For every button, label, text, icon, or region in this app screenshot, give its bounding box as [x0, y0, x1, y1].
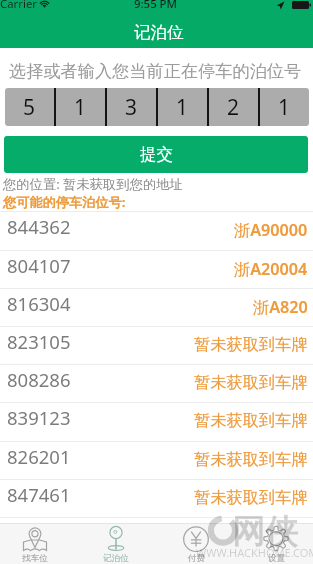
button[interactable]: Find parking: [0, 524, 74, 564]
staticText: 暂未获取到车牌: [194, 372, 308, 392]
staticText: 826201: [7, 444, 71, 469]
staticText: 暂未获取到车牌: [194, 334, 308, 354]
staticText: 付费: [188, 553, 205, 564]
button[interactable]: 823105: [0, 326, 313, 364]
staticText: 823105: [7, 329, 71, 354]
staticText: 2: [227, 93, 240, 122]
staticText: 您可能的停车泊位号:: [3, 193, 126, 211]
staticText: 3: [125, 93, 138, 122]
staticText: 804107: [7, 253, 71, 278]
staticText: 记泊位: [134, 22, 184, 43]
staticText: 暂未获取到车牌: [194, 449, 308, 469]
staticText: 您的位置: 暂未获取到您的地址: [3, 175, 183, 193]
button[interactable]: 5: [5, 88, 54, 126]
staticText: 选择或者输入您当前正在停车的泊位号: [9, 60, 302, 82]
button[interactable]: 1: [158, 88, 207, 126]
staticText: 844362: [7, 214, 71, 239]
other: Settings: [263, 526, 289, 553]
staticText: 提交: [140, 144, 173, 165]
staticText: 网侠: [232, 511, 298, 553]
staticText: 1: [176, 93, 189, 122]
button[interactable]: 816304: [0, 288, 313, 326]
button[interactable]: 1: [56, 88, 105, 126]
staticText: Carrier: [0, 0, 38, 10]
button[interactable]: 1: [260, 88, 309, 126]
button[interactable]: 826201: [0, 441, 313, 479]
button[interactable]: 808286: [0, 364, 313, 402]
staticText: 浙A20004: [234, 258, 308, 280]
staticText: 暂未获取到车牌: [194, 410, 308, 430]
staticText: 浙A90000: [234, 219, 308, 241]
staticText: WWW.HACKHOME.COM: [196, 545, 313, 560]
staticText: 记泊位: [103, 553, 129, 564]
staticText: 839123: [7, 405, 71, 430]
staticText: 浙A820: [253, 296, 308, 318]
button[interactable]: Pay: [157, 524, 235, 564]
button[interactable]: Record spot: [77, 524, 155, 564]
button[interactable]: 3: [107, 88, 156, 126]
staticText: 找车位: [22, 553, 48, 564]
other: Record spot: [103, 526, 129, 553]
staticText: 9:55 PM: [134, 0, 178, 10]
staticText: 暂未获取到车牌: [194, 487, 308, 507]
staticText: 816304: [7, 291, 71, 316]
button[interactable]: 804107: [0, 250, 313, 288]
button[interactable]: Settings: [237, 524, 313, 564]
staticText: 1: [278, 93, 291, 122]
button[interactable]: 提交: [4, 136, 308, 173]
staticText: 847461: [7, 482, 71, 507]
button[interactable]: 839123: [0, 402, 313, 440]
staticText: 1: [74, 93, 87, 122]
staticText: 设置: [268, 553, 285, 564]
other: Pay: [183, 526, 209, 553]
staticText: 808286: [7, 367, 71, 392]
other: Find parking: [22, 526, 48, 553]
staticText: 5: [23, 93, 36, 122]
button[interactable]: 847461: [0, 479, 313, 517]
button[interactable]: 844362: [0, 211, 313, 249]
button[interactable]: 2: [209, 88, 258, 126]
